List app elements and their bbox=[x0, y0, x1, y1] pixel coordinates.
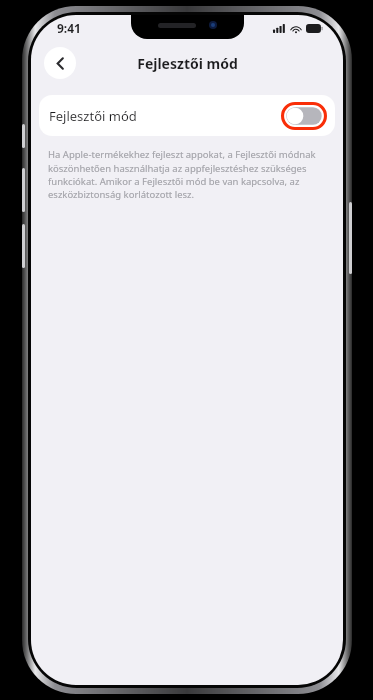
staticText: 9:41 bbox=[57, 20, 81, 36]
staticText: Fejlesztői mód bbox=[49, 107, 137, 125]
button[interactable]: Back bbox=[44, 47, 76, 79]
staticText: Fejlesztői mód bbox=[137, 54, 238, 73]
button[interactable]: Fejlesztői mód bbox=[39, 95, 335, 136]
staticText: Ha Apple-termékekhez fejleszt appokat, a… bbox=[48, 148, 321, 200]
button[interactable]: Fejlesztői mód switch bbox=[281, 102, 327, 130]
